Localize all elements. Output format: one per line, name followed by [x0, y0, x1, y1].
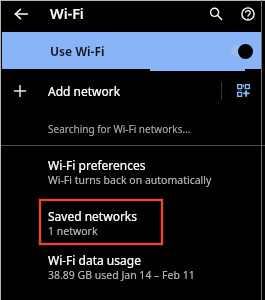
button[interactable]: Search: [203, 1, 228, 26]
staticText: 1 network: [48, 224, 98, 238]
staticText: Wi-Fi data usage: [48, 252, 141, 268]
staticText: 38.89 GB used Jan 14 – Feb 11: [48, 268, 195, 282]
staticText: Searching for Wi-Fi networks…: [48, 122, 191, 136]
button[interactable]: Scan QR code: [229, 76, 257, 104]
staticText: Use Wi-Fi: [50, 43, 105, 59]
button[interactable]: Add network: [0, 72, 265, 109]
button[interactable]: Use Wi-Fi: [2, 32, 261, 69]
staticText: Saved networks: [48, 208, 138, 224]
button[interactable]: Wi-Fi preferences: [0, 152, 265, 194]
button[interactable]: Wi-Fi data usage: [0, 247, 265, 289]
button[interactable]: Saved networks: [0, 203, 265, 245]
staticText: Wi-Fi turns back on automatically: [48, 173, 212, 187]
staticText: Wi-Fi preferences: [48, 157, 146, 173]
button[interactable]: Help: [235, 1, 260, 26]
staticText: Add network: [48, 83, 121, 99]
staticText: Wi-Fi: [50, 3, 84, 23]
button[interactable]: Back: [8, 1, 33, 26]
